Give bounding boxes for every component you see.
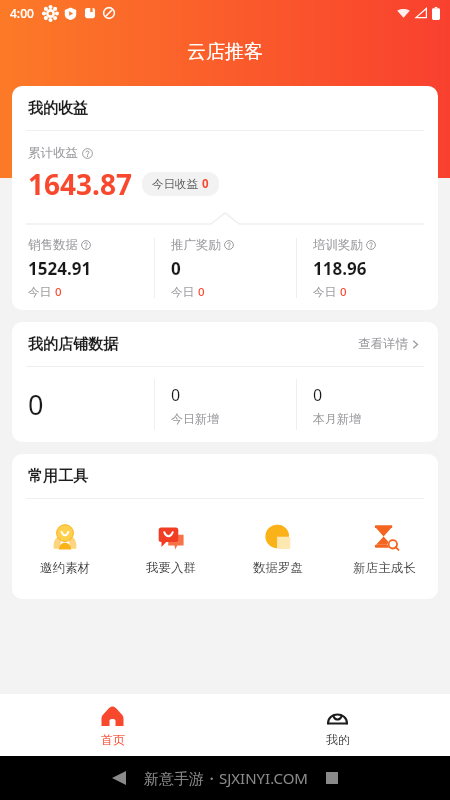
button[interactable]: 我的 bbox=[225, 694, 450, 756]
button[interactable]: 查看详情 bbox=[354, 332, 424, 356]
staticText: 今日收益 bbox=[152, 177, 198, 191]
button[interactable]: 0 bbox=[155, 367, 296, 442]
button[interactable]: 培训奖励 bbox=[313, 226, 438, 310]
staticText: 0 bbox=[313, 384, 323, 406]
button[interactable]: 数据罗盘 bbox=[224, 499, 331, 599]
staticText: 查看详情 bbox=[358, 336, 408, 352]
button[interactable]: 我要入群 bbox=[118, 499, 224, 599]
staticText: 0 bbox=[198, 284, 205, 300]
staticText: 新意手游・SJXINYI.COM bbox=[144, 768, 308, 788]
staticText: 新店主成长 bbox=[353, 560, 416, 576]
staticText: 今日 bbox=[28, 285, 51, 299]
staticText: 我的收益 bbox=[28, 99, 88, 118]
staticText: 1524.91 bbox=[28, 257, 92, 280]
staticText: 邀约素材 bbox=[40, 560, 90, 576]
staticText: 云店推客 bbox=[187, 40, 263, 64]
button[interactable]: 推广奖励 bbox=[171, 226, 296, 310]
staticText: 常用工具 bbox=[28, 467, 88, 486]
button[interactable]: 新店主成长 bbox=[331, 499, 438, 599]
staticText: 0 bbox=[171, 257, 181, 280]
staticText: 我的 bbox=[326, 732, 350, 747]
staticText: 培训奖励 bbox=[313, 237, 363, 253]
staticText: 今日新增 bbox=[171, 411, 219, 426]
button[interactable]: 今日收益 bbox=[142, 172, 219, 196]
staticText: 首页 bbox=[101, 732, 125, 747]
staticText: 4:00 bbox=[10, 5, 34, 21]
button[interactable]: 销售数据 bbox=[28, 226, 154, 310]
staticText: 118.96 bbox=[313, 257, 367, 280]
staticText: 本月新增 bbox=[313, 411, 361, 426]
staticText: 累计收益 bbox=[28, 145, 78, 161]
staticText: 数据罗盘 bbox=[253, 560, 303, 576]
button[interactable]: 邀约素材 bbox=[12, 499, 118, 599]
staticText: 我的店铺数据 bbox=[28, 335, 118, 354]
staticText: 0 bbox=[28, 386, 44, 423]
staticText: 0 bbox=[171, 384, 181, 406]
button[interactable]: Back bbox=[112, 771, 126, 785]
staticText: 0 bbox=[202, 176, 209, 192]
staticText: 我要入群 bbox=[146, 560, 196, 576]
staticText: 0 bbox=[340, 284, 347, 300]
staticText: 1643.87 bbox=[28, 165, 132, 203]
staticText: 推广奖励 bbox=[171, 237, 221, 253]
staticText: 销售数据 bbox=[28, 237, 78, 253]
button[interactable]: 首页 bbox=[0, 694, 225, 756]
button[interactable]: 0 bbox=[297, 367, 438, 442]
staticText: 0 bbox=[55, 284, 62, 300]
staticText: 今日 bbox=[313, 285, 336, 299]
staticText: 今日 bbox=[171, 285, 194, 299]
